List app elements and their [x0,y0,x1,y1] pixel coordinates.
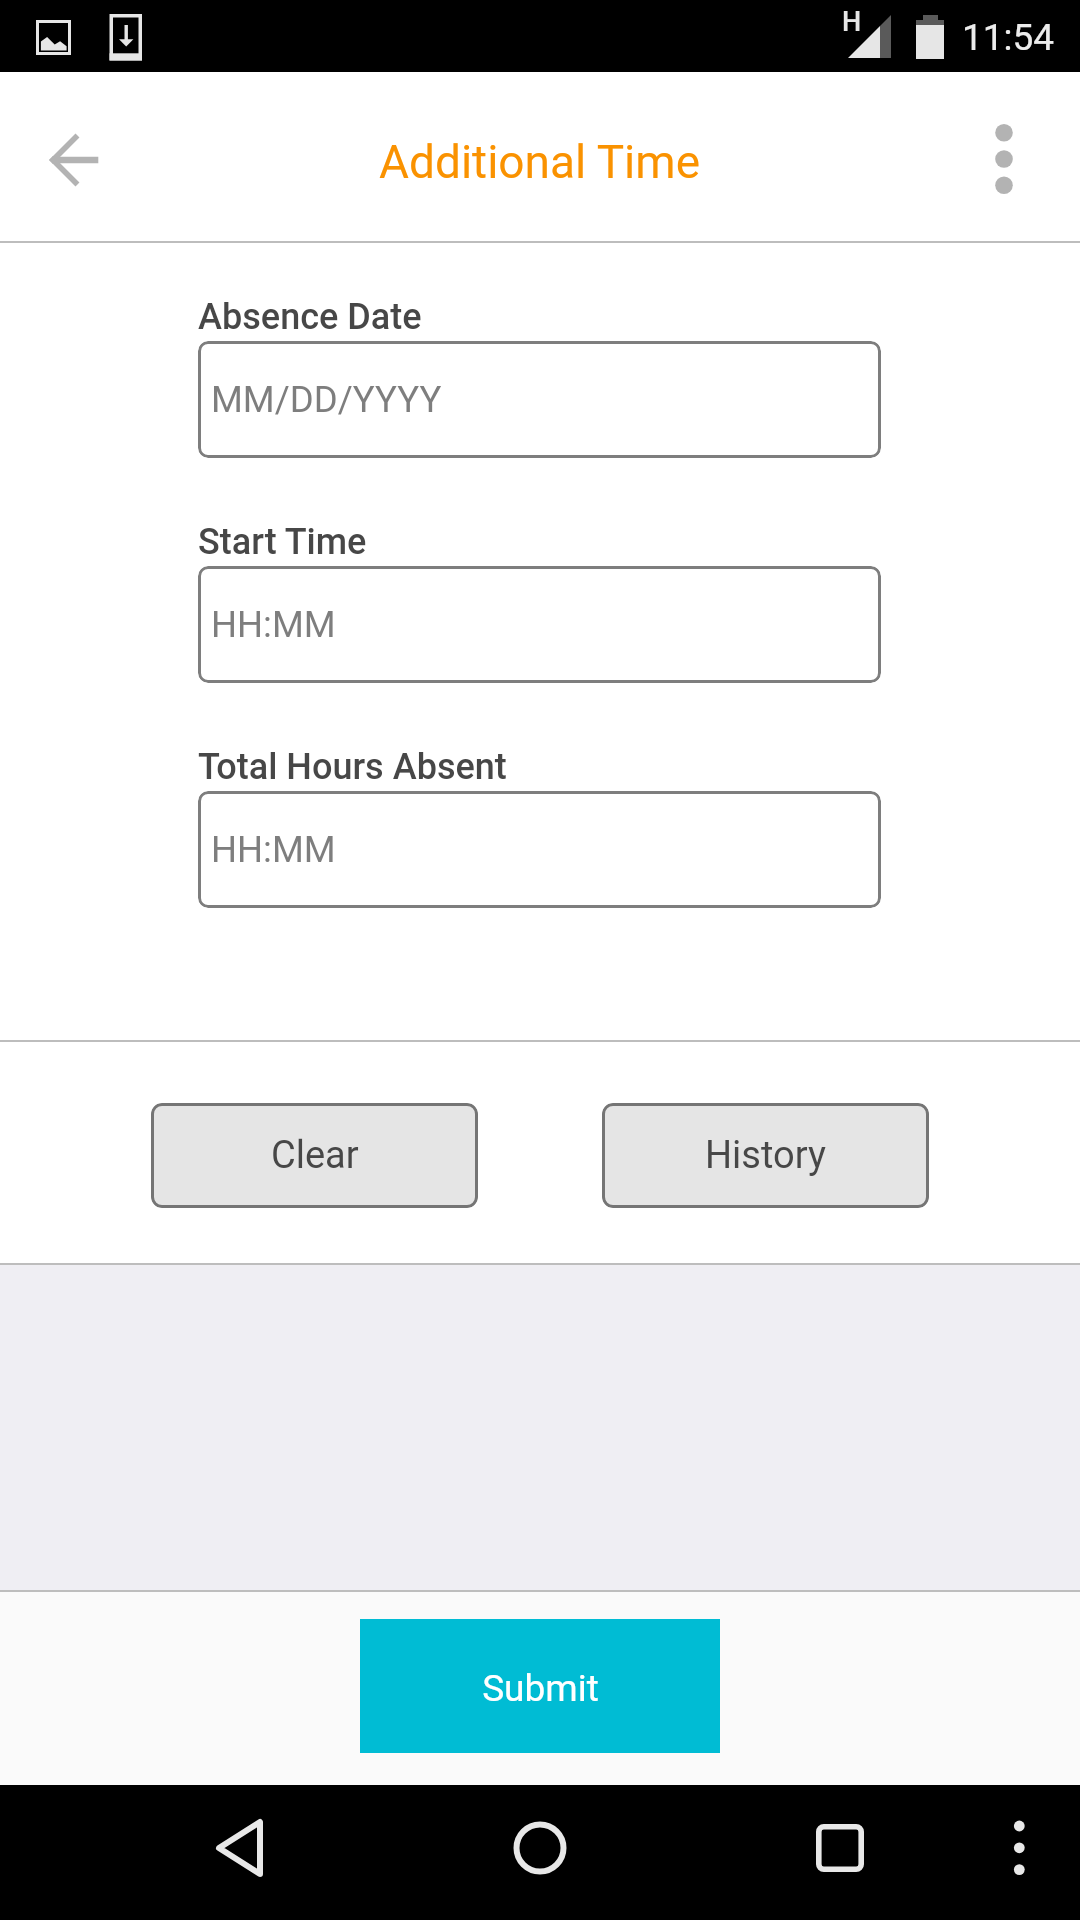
button[interactable]: HH:MM [198,791,881,908]
button[interactable]: Submit [360,1619,720,1753]
staticText: H [842,6,862,38]
button[interactable]: Menu [959,1788,1079,1908]
button[interactable]: More options [952,109,1056,209]
button[interactable]: Navigate up [23,109,127,213]
staticText: Total Hours Absent [198,746,507,788]
staticText: Start Time [198,521,367,563]
button[interactable]: History [602,1103,929,1208]
staticText: Absence Date [198,296,422,338]
staticText: 11:54 [962,16,1055,59]
button[interactable]: Home [480,1788,600,1908]
staticText: History [705,1133,826,1178]
button[interactable]: Back [180,1788,300,1908]
staticText: Clear [271,1133,359,1178]
button[interactable]: MM/DD/YYYY [198,341,881,458]
staticText: Submit [482,1667,599,1710]
button[interactable]: Recent apps [780,1788,900,1908]
staticText: Additional Time [379,135,701,189]
staticText: MM/DD/YYYY [211,378,442,421]
staticText: HH:MM [211,603,336,646]
staticText: HH:MM [211,828,336,871]
button[interactable]: Clear [151,1103,478,1208]
button[interactable]: HH:MM [198,566,881,683]
